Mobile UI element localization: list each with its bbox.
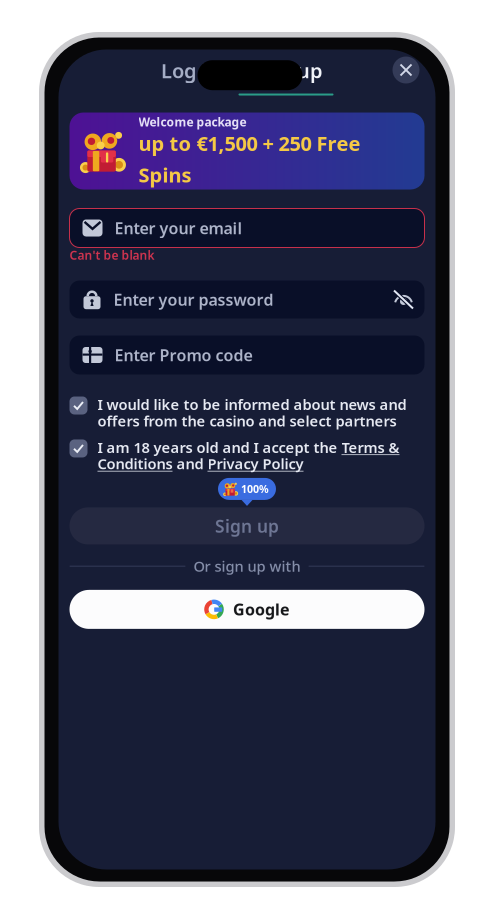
button[interactable]: I am 18 years old and I accept the Terms… [58,437,435,473]
staticText: Welcome package [138,114,246,130]
button[interactable]: Google [69,590,424,629]
staticText: Can't be blank [69,247,154,263]
staticText: Sign up [215,514,279,537]
button[interactable]: Sign up [238,49,333,97]
button[interactable]: Close [392,56,419,83]
button[interactable]: Show password [393,290,413,309]
staticText: I would like to be informed about news a… [97,394,406,430]
staticText: Log in [161,57,221,84]
staticText: up to €1,500 + 250 Free Spins [138,130,360,188]
staticText: Enter your password [113,289,273,310]
staticText: Enter your email [114,217,242,239]
staticText: 100% [241,482,269,496]
staticText: Enter Promo code [114,344,252,366]
button[interactable]: Sign up [69,507,424,544]
button[interactable]: I would like to be informed about news a… [58,394,435,430]
staticText: Google [233,599,290,620]
button[interactable]: Log in [143,49,238,97]
button[interactable]: Welcome package [69,112,424,189]
staticText: Sign up [249,57,323,84]
staticText: Or sign up with [193,556,300,576]
staticText: I am 18 years old and I accept the Terms… [97,437,399,473]
